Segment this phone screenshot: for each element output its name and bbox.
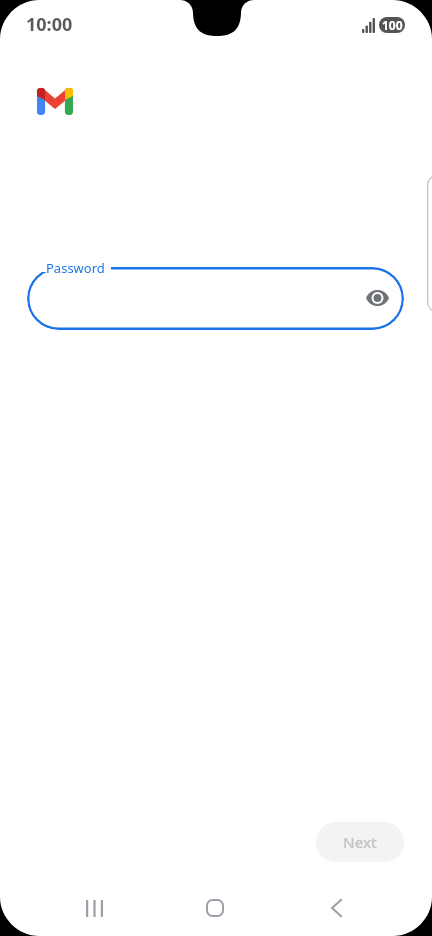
button[interactable]: Password — [27, 267, 404, 330]
staticText: 100 — [382, 17, 403, 33]
other: Mobile signal — [362, 18, 375, 33]
button[interactable]: Back — [306, 878, 366, 936]
button[interactable]: Show password — [357, 278, 397, 318]
staticText: Next — [343, 832, 377, 852]
button[interactable]: Recent apps — [64, 878, 124, 936]
staticText: Password — [46, 259, 105, 277]
button[interactable]: Next — [316, 822, 404, 862]
staticText: 10:00 — [26, 12, 73, 37]
button[interactable]: Home — [185, 878, 245, 936]
